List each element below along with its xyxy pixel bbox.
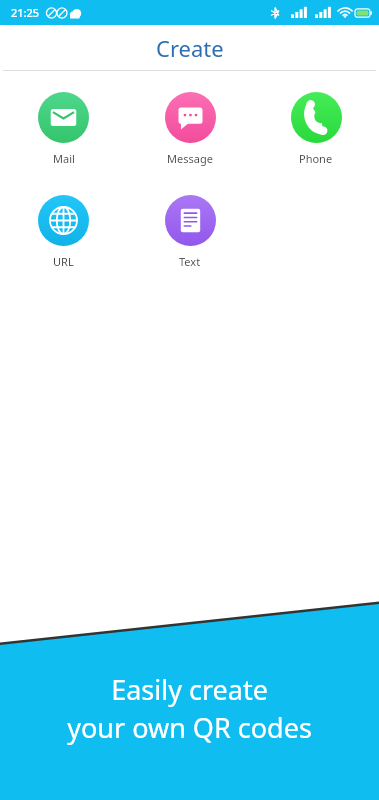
staticText: Easily create (111, 671, 268, 708)
button[interactable]: Message (127, 88, 253, 170)
button[interactable]: Text (127, 191, 253, 273)
staticText: Phone (299, 151, 333, 166)
staticText: your own QR codes (67, 709, 312, 746)
button[interactable]: URL (0, 191, 127, 273)
staticText: 21:25 (11, 5, 40, 20)
button[interactable]: Phone (253, 88, 379, 170)
staticText: Text (179, 254, 201, 269)
staticText: Create (156, 33, 224, 63)
button[interactable]: Mail (0, 88, 127, 170)
staticText: URL (53, 254, 74, 269)
staticText: Mail (53, 151, 75, 166)
staticText: Message (167, 151, 213, 166)
